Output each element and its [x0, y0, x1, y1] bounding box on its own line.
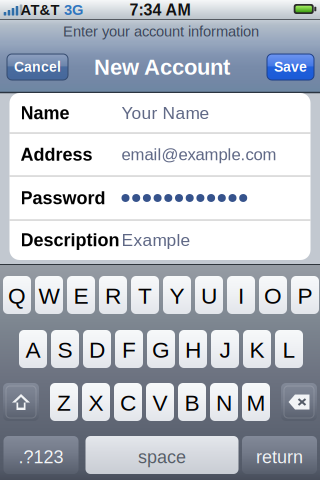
button[interactable]: B: [178, 383, 206, 421]
button[interactable]: R: [99, 276, 127, 314]
staticText: H: [185, 337, 201, 363]
staticText: T: [138, 283, 152, 309]
staticText: space: [138, 447, 186, 467]
button[interactable]: Name: [9, 93, 310, 133]
staticText: Example: [121, 230, 190, 250]
staticText: .?123: [18, 447, 63, 467]
staticText: M: [246, 390, 265, 416]
button[interactable]: W: [35, 276, 63, 314]
staticText: E: [73, 283, 88, 309]
button[interactable]: Q: [3, 276, 31, 314]
staticText: New Account: [94, 55, 230, 79]
button[interactable]: Z: [50, 383, 78, 421]
button[interactable]: C: [114, 383, 142, 421]
button[interactable]: space: [85, 436, 238, 474]
staticText: Y: [169, 283, 184, 309]
staticText: I: [238, 283, 244, 309]
staticText: U: [201, 283, 217, 309]
staticText: Save: [274, 59, 307, 75]
button[interactable]: Delete: [281, 383, 317, 421]
staticText: A: [25, 337, 40, 363]
staticText: Your Name: [121, 103, 209, 123]
button[interactable]: Password: [9, 176, 310, 220]
button[interactable]: P: [291, 276, 319, 314]
button[interactable]: L: [275, 330, 303, 368]
staticText: 7:34 AM: [129, 1, 190, 19]
button[interactable]: .?123: [3, 436, 78, 474]
button[interactable]: Cancel: [7, 54, 68, 80]
button[interactable]: F: [115, 330, 143, 368]
staticText: G: [152, 337, 170, 363]
button[interactable]: Save: [267, 54, 314, 80]
staticText: J: [219, 337, 230, 363]
staticText: L: [282, 337, 295, 363]
staticText: N: [216, 390, 232, 416]
button[interactable]: Description: [9, 220, 310, 260]
button[interactable]: A: [19, 330, 47, 368]
staticText: B: [184, 390, 199, 416]
staticText: Q: [8, 283, 26, 309]
staticText: K: [249, 337, 264, 363]
button[interactable]: O: [259, 276, 287, 314]
staticText: V: [152, 390, 167, 416]
staticText: email@example.com: [121, 145, 276, 164]
staticText: S: [57, 337, 72, 363]
staticText: Address: [20, 144, 92, 164]
button[interactable]: Y: [163, 276, 191, 314]
staticText: return: [256, 447, 303, 467]
staticText: Password: [20, 188, 105, 208]
button[interactable]: T: [131, 276, 159, 314]
staticText: AT&T: [20, 2, 59, 18]
button[interactable]: D: [83, 330, 111, 368]
button[interactable]: X: [82, 383, 110, 421]
button[interactable]: H: [179, 330, 207, 368]
staticText: C: [120, 390, 136, 416]
staticText: F: [122, 337, 136, 363]
button[interactable]: J: [211, 330, 239, 368]
staticText: R: [105, 283, 121, 309]
staticText: Cancel: [14, 59, 61, 75]
button[interactable]: S: [51, 330, 79, 368]
button[interactable]: Shift: [3, 383, 39, 421]
staticText: 3G: [64, 2, 83, 18]
button[interactable]: M: [242, 383, 270, 421]
button[interactable]: U: [195, 276, 223, 314]
button[interactable]: K: [243, 330, 271, 368]
staticText: W: [38, 283, 59, 309]
staticText: Name: [20, 103, 69, 123]
staticText: Description: [20, 230, 119, 250]
staticText: Z: [57, 390, 71, 416]
staticText: X: [88, 390, 103, 416]
button[interactable]: N: [210, 383, 238, 421]
staticText: P: [297, 283, 312, 309]
button[interactable]: return: [242, 436, 317, 474]
staticText: Enter your account information: [63, 23, 259, 40]
button[interactable]: V: [146, 383, 174, 421]
button[interactable]: I: [227, 276, 255, 314]
staticText: D: [89, 337, 105, 363]
button[interactable]: G: [147, 330, 175, 368]
staticText: O: [264, 283, 282, 309]
button[interactable]: Address: [9, 133, 310, 176]
button[interactable]: E: [67, 276, 95, 314]
